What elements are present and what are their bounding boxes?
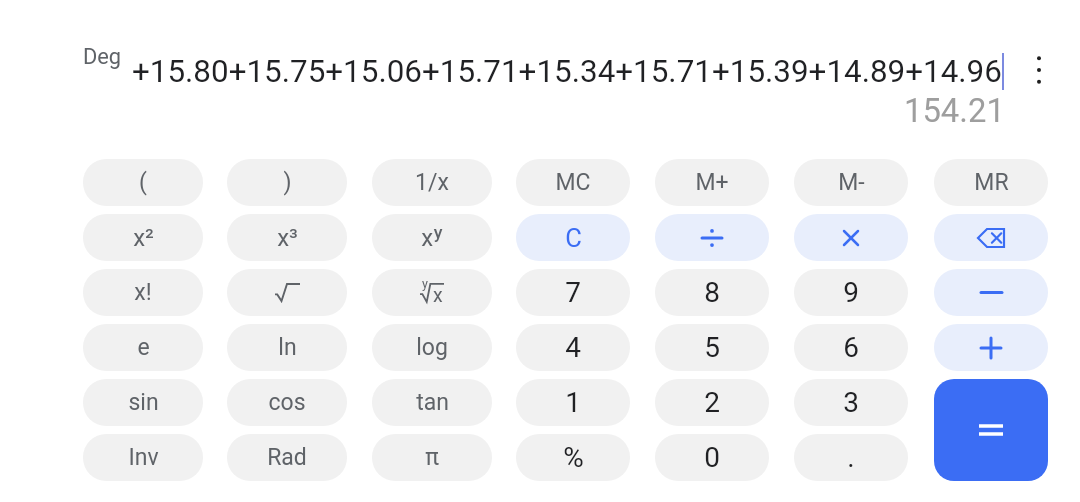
staticText: . (847, 441, 855, 474)
staticText: MC (555, 169, 591, 196)
button[interactable]: 3 (794, 379, 908, 426)
button[interactable]: 6 (794, 324, 908, 371)
button[interactable]: M- (794, 159, 908, 206)
button[interactable]: e (83, 324, 203, 371)
staticText: x² (133, 224, 154, 252)
staticText: sin (128, 389, 159, 416)
button[interactable]: More options (1022, 48, 1056, 92)
staticText: π (425, 444, 439, 471)
staticText: x! (134, 279, 152, 306)
button[interactable]: 4 (516, 324, 630, 371)
staticText: 2 (704, 386, 720, 419)
button[interactable]: x² (83, 214, 203, 261)
staticText: % (563, 441, 584, 474)
button[interactable]: xʸ (372, 214, 492, 261)
staticText: C (565, 223, 582, 253)
staticText: e (137, 334, 150, 361)
button[interactable]: 2 (655, 379, 769, 426)
staticText: 1 (565, 386, 581, 419)
staticText: 4 (565, 331, 581, 364)
staticText: 8 (704, 276, 720, 309)
button[interactable]: . (794, 434, 908, 481)
button[interactable]: x³ (227, 214, 347, 261)
staticText: tan (416, 389, 449, 416)
staticText: 0 (704, 441, 720, 474)
staticText: MR (974, 169, 1009, 196)
button[interactable]: ( (83, 159, 203, 206)
staticText: xʸ (421, 224, 443, 252)
button[interactable]: x! (83, 269, 203, 316)
staticText: +15.80+15.75+15.06+15.71+15.34+15.71+15.… (132, 53, 1002, 90)
button[interactable]: log (372, 324, 492, 371)
staticText: Rad (267, 444, 307, 471)
button[interactable]: M+ (655, 159, 769, 206)
staticText: ( (139, 169, 147, 196)
button[interactable]: 9 (794, 269, 908, 316)
button[interactable]: % (516, 434, 630, 481)
button[interactable]: 1/x (372, 159, 492, 206)
button[interactable]: Backspace (934, 214, 1048, 261)
button[interactable]: 0 (655, 434, 769, 481)
staticText: 154.21 (904, 92, 1005, 130)
staticText: ln (278, 334, 297, 361)
button[interactable]: 5 (655, 324, 769, 371)
button[interactable]: ) (227, 159, 347, 206)
button[interactable]: π (372, 434, 492, 481)
staticText: x (433, 284, 443, 306)
staticText: 5 (704, 331, 720, 364)
button[interactable]: Minus (934, 269, 1048, 316)
button[interactable]: 8 (655, 269, 769, 316)
button[interactable]: ln (227, 324, 347, 371)
button[interactable]: Equals (934, 379, 1048, 481)
button[interactable]: MC (516, 159, 630, 206)
staticText: M- (838, 169, 865, 196)
staticText: cos (268, 389, 306, 416)
button[interactable]: Plus (934, 324, 1048, 371)
button[interactable]: Rad (227, 434, 347, 481)
button[interactable]: Nth root of x (372, 269, 492, 316)
staticText: M+ (695, 169, 729, 196)
button[interactable]: cos (227, 379, 347, 426)
staticText: x³ (277, 224, 298, 252)
button[interactable]: sin (83, 379, 203, 426)
button[interactable]: Divide (655, 214, 769, 261)
staticText: y (422, 276, 428, 291)
staticText: 9 (843, 276, 859, 309)
button[interactable]: 1 (516, 379, 630, 426)
staticText: 7 (565, 276, 581, 309)
button[interactable]: 7 (516, 269, 630, 316)
button[interactable]: tan (372, 379, 492, 426)
staticText: Inv (128, 444, 159, 471)
staticText: ) (283, 169, 292, 196)
button[interactable]: MR (934, 159, 1048, 206)
staticText: 1/x (415, 169, 449, 196)
button[interactable]: Square root (227, 269, 347, 316)
button[interactable]: Multiply (794, 214, 908, 261)
staticText: Deg (83, 44, 122, 70)
staticText: 3 (843, 386, 859, 419)
staticText: 6 (843, 331, 859, 364)
button[interactable]: C (516, 214, 630, 261)
button[interactable]: Inv (83, 434, 203, 481)
staticText: log (416, 334, 448, 361)
